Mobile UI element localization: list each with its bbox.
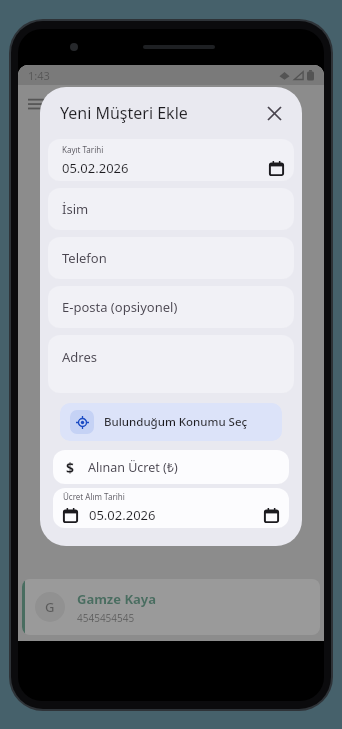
button[interactable]: Telefon xyxy=(48,237,294,279)
button[interactable]: İsim xyxy=(48,188,294,230)
button[interactable]: G xyxy=(22,579,320,635)
other: Tarih seç xyxy=(264,508,279,523)
staticText: Adres xyxy=(62,348,97,366)
staticText: Yeni Müşteri Ekle xyxy=(60,102,188,124)
staticText: Alınan Ücret (₺) xyxy=(88,459,178,476)
button[interactable]: Bulunduğum Konumu Seç xyxy=(60,403,282,441)
button[interactable]: Adres xyxy=(48,335,294,393)
staticText: Gamze Kaya xyxy=(77,590,157,608)
staticText: Bulunduğum Konumu Seç xyxy=(104,414,248,430)
staticText: 1:43 xyxy=(28,68,50,83)
staticText: $ xyxy=(66,458,75,477)
button[interactable]: E-posta (opsiyonel) xyxy=(48,286,294,328)
staticText: G xyxy=(45,598,55,616)
button[interactable]: Kayıt Tarihi xyxy=(48,139,294,181)
staticText: 05.02.2026 xyxy=(62,159,129,177)
staticText: Kayıt Tarihi xyxy=(62,144,104,155)
button[interactable]: Ücret Alım Tarihi xyxy=(53,488,289,528)
other: Tarih seç xyxy=(269,161,284,176)
staticText: 05.02.2026 xyxy=(89,506,156,524)
button[interactable]: $ xyxy=(53,450,289,484)
staticText: E-posta (opsiyonel) xyxy=(62,298,178,316)
staticText: Telefon xyxy=(62,249,107,267)
staticText: 4545454545 xyxy=(77,611,135,625)
other: Tarih seç xyxy=(63,508,78,523)
staticText: Ücret Alım Tarihi xyxy=(63,491,125,502)
staticText: İsim xyxy=(62,200,89,218)
button[interactable]: Kapat xyxy=(260,99,288,127)
